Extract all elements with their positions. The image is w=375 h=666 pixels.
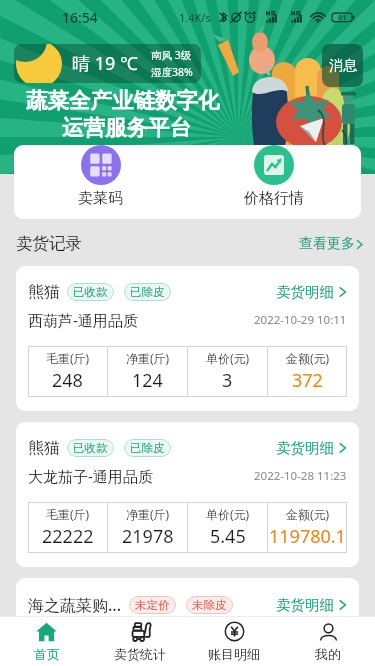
button[interactable]: 卖货明细: [276, 439, 347, 457]
staticText: 金额(元): [286, 350, 330, 366]
staticText: 湿度38%: [151, 65, 193, 79]
staticText: 3: [222, 368, 233, 393]
button[interactable]: 查看更多: [299, 235, 363, 253]
staticText: 卖货统计: [114, 646, 166, 662]
button[interactable]: 卖菜码: [14, 145, 187, 219]
staticText: 未定价: [135, 598, 170, 612]
staticText: 西葫芦-通用品质: [28, 310, 138, 330]
staticText: 卖货记录: [16, 233, 82, 254]
staticText: 蔬菜全产业链数字化: [26, 87, 220, 114]
staticText: 净重(斤): [126, 350, 170, 366]
button[interactable]: 卖货统计: [93, 617, 187, 666]
button[interactable]: 熊猫: [16, 422, 359, 567]
staticText: 毛重(斤): [46, 350, 90, 366]
staticText: 单价(元): [206, 506, 250, 522]
staticText: 卖货明细: [276, 439, 334, 457]
button[interactable]: 账目明细: [187, 617, 281, 666]
staticText: 查看更多: [299, 235, 355, 253]
staticText: 消息: [329, 57, 357, 75]
staticText: 124: [132, 368, 163, 393]
staticText: 我的: [315, 646, 341, 662]
button[interactable]: 价格行情: [187, 145, 361, 219]
staticText: 熊猫: [28, 438, 60, 458]
staticText: 81: [338, 12, 347, 22]
staticText: 晴 19 ℃: [72, 51, 138, 76]
staticText: 净重(斤): [126, 506, 170, 522]
staticText: 账目明细: [208, 646, 260, 662]
staticText: 372: [292, 368, 323, 393]
staticText: 2022-10-28 11:23: [254, 468, 347, 484]
staticText: 海之蔬菜购...: [28, 594, 122, 616]
staticText: 2022-10-29 10:11: [254, 312, 347, 328]
staticText: 单价(元): [206, 350, 250, 366]
staticText: 卖菜码: [78, 189, 123, 208]
staticText: 卖货明细: [276, 596, 334, 614]
button[interactable]: 熊猫: [16, 266, 359, 411]
button[interactable]: 我的: [281, 617, 375, 666]
staticText: 金额(元): [286, 506, 330, 522]
staticText: 熊猫: [28, 282, 60, 302]
staticText: 21978: [122, 524, 174, 549]
staticText: 5.45: [210, 524, 246, 549]
staticText: 16:54: [62, 8, 98, 27]
staticText: 卖货明细: [276, 283, 334, 301]
button[interactable]: 卖货明细: [276, 283, 347, 301]
staticText: 南风 3级: [151, 48, 192, 62]
staticText: 已除皮: [130, 285, 165, 299]
staticText: 119780.1: [269, 524, 346, 549]
button[interactable]: 卖货明细: [276, 596, 347, 614]
staticText: 已收款: [73, 285, 108, 299]
button[interactable]: 海之蔬菜购...: [16, 578, 359, 630]
staticText: 毛重(斤): [46, 506, 90, 522]
staticText: 1.4K/s: [179, 10, 211, 25]
staticText: 22222: [42, 524, 94, 549]
staticText: 大龙茄子-通用品质: [28, 466, 153, 486]
staticText: 价格行情: [244, 189, 304, 208]
staticText: 首页: [34, 646, 60, 662]
button[interactable]: 消息: [322, 44, 363, 87]
staticText: 运营服务平台: [62, 114, 191, 141]
staticText: 未除皮: [192, 598, 227, 612]
staticText: 248: [52, 368, 83, 393]
staticText: 已除皮: [130, 441, 165, 455]
button[interactable]: 首页: [0, 617, 93, 666]
staticText: 已收款: [73, 441, 108, 455]
